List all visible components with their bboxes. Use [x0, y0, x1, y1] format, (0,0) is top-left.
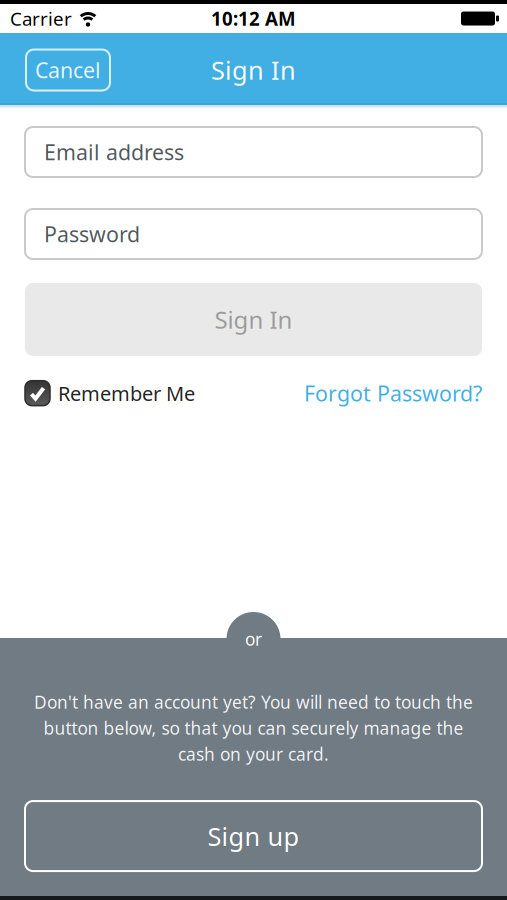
button[interactable]: Sign up [25, 801, 482, 871]
staticText: button below, so that you can securely m… [43, 716, 463, 739]
staticText: Remember Me [58, 380, 195, 406]
button[interactable]: Remember Me [25, 380, 195, 406]
button[interactable]: Cancel [26, 49, 110, 90]
staticText: Cancel [35, 56, 101, 84]
staticText: Sign In [211, 53, 296, 87]
staticText: Forgot Password? [304, 379, 482, 407]
staticText: Sign up [207, 819, 299, 853]
staticText: Carrier [10, 6, 72, 31]
staticText: Sign In [214, 304, 292, 335]
button[interactable]: Password [25, 209, 482, 259]
staticText: Email address [44, 138, 184, 166]
button[interactable]: Email address [25, 127, 482, 177]
staticText: Password [44, 220, 140, 248]
staticText: cash on your card. [178, 742, 329, 765]
button[interactable]: Sign In [25, 283, 482, 356]
staticText: Don't have an account yet? You will need… [34, 690, 473, 713]
staticText: or [245, 627, 262, 650]
staticText: 10:12 AM [211, 6, 296, 31]
button[interactable]: Forgot Password? [304, 379, 482, 407]
